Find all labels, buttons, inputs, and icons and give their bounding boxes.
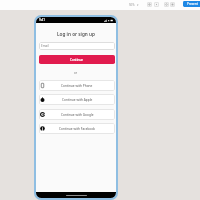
- staticText: Present: [187, 2, 198, 6]
- button[interactable]: Continue with Phone: [39, 80, 115, 91]
- staticText: or: [74, 71, 78, 75]
- staticText: Continue with Google: [61, 113, 94, 117]
- button[interactable]: Email: [39, 42, 115, 50]
- staticText: Continue: [70, 58, 84, 62]
- button[interactable]: Comment: [147, 2, 152, 7]
- staticText: ▾: [137, 3, 139, 6]
- button[interactable]: Present: [154, 2, 159, 7]
- staticText: Continue with Apple: [62, 98, 93, 102]
- staticText: 9:41: [39, 18, 45, 22]
- button[interactable]: 50%: [129, 3, 135, 7]
- button[interactable]: Continue: [39, 55, 115, 64]
- button[interactable]: Continue with Apple: [39, 94, 115, 105]
- button[interactable]: More: [170, 2, 175, 7]
- button[interactable]: Present: [183, 1, 200, 7]
- button[interactable]: Continue with Google: [39, 109, 115, 120]
- button[interactable]: ▾: [137, 3, 139, 6]
- button[interactable]: Share: [164, 2, 169, 7]
- staticText: Log in or sign up: [57, 31, 95, 37]
- staticText: 50%: [129, 3, 135, 7]
- staticText: Email: [41, 44, 49, 48]
- button[interactable]: Continue with Facebook: [39, 123, 115, 134]
- staticText: Continue with Facebook: [59, 127, 96, 131]
- staticText: Continue with Phone: [61, 84, 93, 88]
